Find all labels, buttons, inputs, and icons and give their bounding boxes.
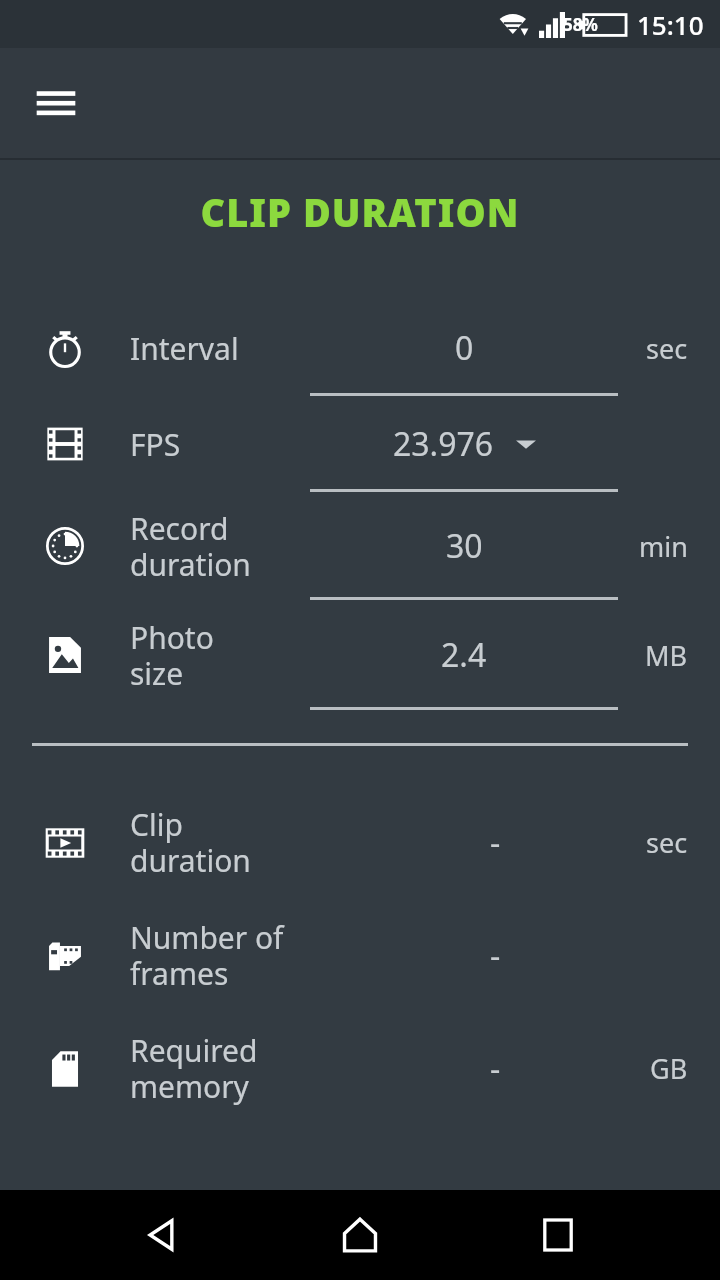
staticText: Clip duration xyxy=(130,804,251,881)
staticText: Interval xyxy=(130,328,239,369)
staticText: CLIP DURATION xyxy=(0,186,720,238)
staticText: 0 xyxy=(455,326,474,370)
button[interactable]: Home xyxy=(325,1200,395,1270)
button[interactable]: Recent apps xyxy=(523,1200,593,1270)
staticText: FPS xyxy=(130,424,181,465)
button[interactable]: FPS xyxy=(0,396,720,492)
button[interactable]: Number of frames xyxy=(0,899,720,1012)
button[interactable]: Open navigation menu xyxy=(24,71,88,135)
button[interactable]: Record duration xyxy=(0,492,720,600)
staticText: 58% xyxy=(563,13,598,36)
staticText: Number of frames xyxy=(130,917,284,994)
staticText: 23.976 xyxy=(393,422,494,466)
staticText: Record duration xyxy=(130,508,251,585)
staticText: MB xyxy=(645,637,688,674)
staticText: - xyxy=(490,821,501,865)
staticText: - xyxy=(490,1047,501,1091)
staticText: sec xyxy=(646,330,688,367)
button[interactable]: Photo size xyxy=(0,600,720,710)
staticText: sec xyxy=(646,824,688,861)
staticText: - xyxy=(490,934,501,978)
staticText: Required memory xyxy=(130,1030,258,1107)
button[interactable]: Required memory xyxy=(0,1012,720,1125)
button[interactable]: Clip duration xyxy=(0,786,720,899)
staticText: 15:10 xyxy=(637,7,704,42)
button[interactable]: Back xyxy=(128,1200,198,1270)
button[interactable]: Interval xyxy=(0,300,720,396)
staticText: GB xyxy=(650,1050,688,1087)
staticText: 2.4 xyxy=(441,633,487,677)
staticText: 30 xyxy=(446,524,483,568)
staticText: min xyxy=(639,528,688,565)
staticText: Photo size xyxy=(130,617,214,694)
